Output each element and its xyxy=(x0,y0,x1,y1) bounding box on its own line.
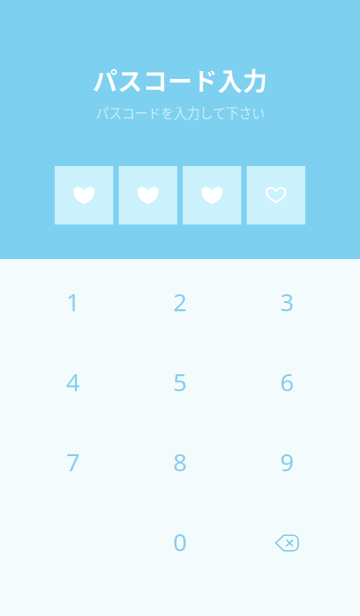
staticText: パスコード入力 xyxy=(92,62,267,98)
staticText: 8 xyxy=(173,446,187,478)
staticText: 9 xyxy=(280,446,294,478)
staticText: 6 xyxy=(280,366,294,398)
button[interactable]: 7 xyxy=(19,422,126,502)
button[interactable]: 5 xyxy=(126,342,233,422)
button[interactable]: 8 xyxy=(126,422,233,502)
button[interactable]: Delete xyxy=(233,502,340,582)
button[interactable]: 4 xyxy=(19,342,126,422)
button[interactable]: 2 xyxy=(126,262,233,342)
staticText: 3 xyxy=(280,286,294,318)
button[interactable]: 0 xyxy=(126,502,233,582)
staticText: 4 xyxy=(66,366,80,398)
staticText: 7 xyxy=(66,446,80,478)
button[interactable]: 1 xyxy=(19,262,126,342)
button[interactable]: 9 xyxy=(233,422,340,502)
button[interactable]: 3 xyxy=(233,262,340,342)
staticText: 5 xyxy=(173,366,187,398)
staticText: 0 xyxy=(173,526,187,558)
staticText: パスコードを入力して下さい xyxy=(95,103,264,122)
staticText: 2 xyxy=(173,286,187,318)
staticText: 1 xyxy=(66,286,80,318)
button[interactable]: 6 xyxy=(233,342,340,422)
